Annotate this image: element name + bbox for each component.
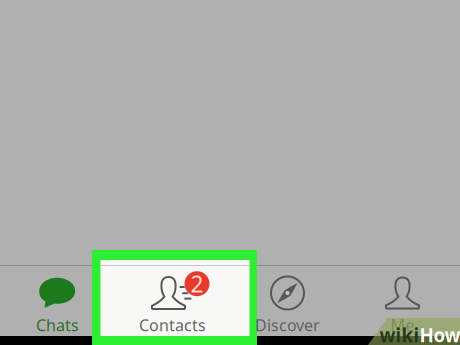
- button[interactable]: Chats: [0, 258, 115, 338]
- staticText: Me: [390, 314, 414, 336]
- button[interactable]: Discover: [230, 258, 345, 338]
- button[interactable]: 2: [115, 258, 230, 338]
- button[interactable]: Me: [345, 258, 460, 338]
- staticText: Discover: [255, 314, 320, 336]
- staticText: Chats: [36, 314, 79, 336]
- staticText: How: [419, 323, 460, 345]
- staticText: Contacts: [139, 314, 206, 336]
- staticText: 2: [190, 269, 203, 299]
- staticText: wiki: [379, 323, 419, 345]
